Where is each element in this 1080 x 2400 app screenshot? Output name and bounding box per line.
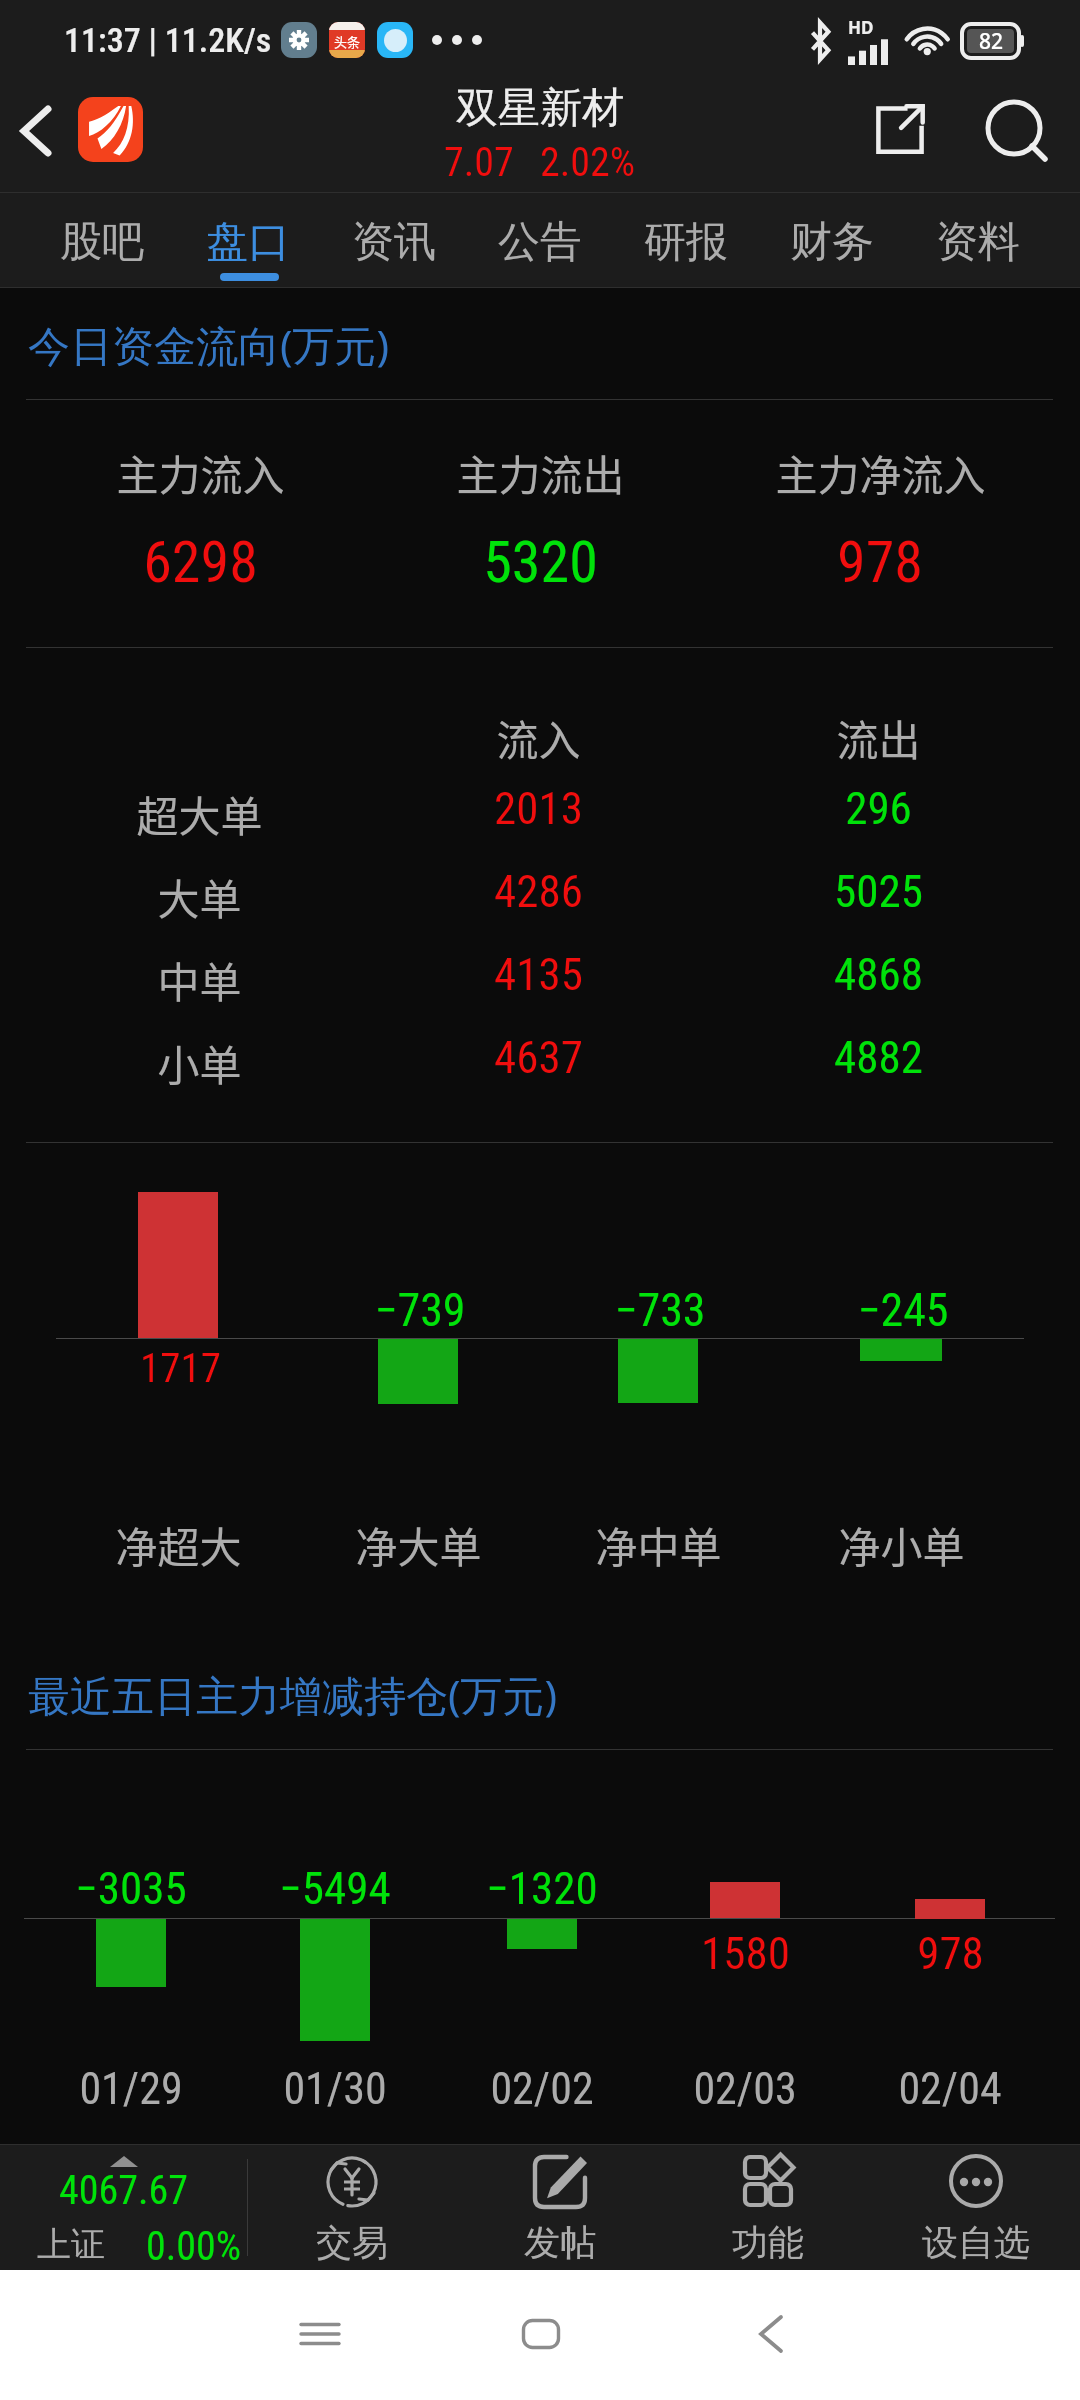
staticText: 0.00% bbox=[146, 2223, 242, 2270]
button[interactable]: 设自选 bbox=[872, 2145, 1080, 2270]
staticText: 01/30 bbox=[283, 2063, 387, 2115]
staticText: 6298 bbox=[143, 528, 258, 596]
staticText: 7.07 bbox=[444, 139, 514, 186]
button[interactable]: 财务 bbox=[759, 193, 905, 287]
button[interactable]: 4067.67 bbox=[0, 2145, 247, 2270]
staticText: 最近五日主力增减持仓(万元) bbox=[28, 1666, 558, 1723]
staticText: 设自选 bbox=[922, 2220, 1030, 2265]
staticText: 主力流入 bbox=[116, 442, 285, 503]
staticText: 上证 bbox=[37, 2223, 105, 2266]
staticText: 中单 bbox=[157, 949, 242, 1010]
button[interactable]: Home bbox=[451, 2270, 631, 2400]
button[interactable]: 资讯 bbox=[321, 193, 467, 287]
staticText: 净中单 bbox=[595, 1514, 722, 1575]
button[interactable]: App logo bbox=[78, 97, 143, 162]
staticText: 财务 bbox=[790, 216, 874, 269]
staticText: 研报 bbox=[644, 216, 728, 269]
staticText: 大单 bbox=[157, 866, 242, 927]
staticText: 1580 bbox=[701, 1927, 790, 1980]
button[interactable]: 功能 bbox=[664, 2145, 872, 2270]
staticText: 流入 bbox=[496, 707, 581, 768]
button[interactable]: 股吧 bbox=[29, 193, 175, 287]
button[interactable]: Back bbox=[0, 75, 76, 187]
staticText: 978 bbox=[917, 1927, 984, 1980]
staticText: 02/04 bbox=[898, 2063, 1002, 2115]
staticText: 4286 bbox=[494, 865, 583, 918]
staticText: 流出 bbox=[836, 707, 921, 768]
staticText: 超大单 bbox=[136, 783, 263, 844]
staticText: 4135 bbox=[494, 948, 583, 1001]
button[interactable]: 资料 bbox=[905, 193, 1051, 287]
staticText: 资料 bbox=[936, 216, 1020, 269]
staticText: 1717 bbox=[140, 1344, 221, 1392]
button[interactable]: 研报 bbox=[613, 193, 759, 287]
staticText: 82 bbox=[979, 27, 1004, 56]
staticText: 主力流出 bbox=[456, 442, 625, 503]
button[interactable]: 发帖 bbox=[456, 2145, 664, 2270]
staticText: 净超大 bbox=[115, 1514, 242, 1575]
staticText: 公告 bbox=[498, 216, 582, 269]
button[interactable]: Share bbox=[855, 84, 945, 174]
staticText: 4637 bbox=[494, 1031, 583, 1084]
staticText: HD bbox=[848, 16, 874, 39]
staticText: 净大单 bbox=[355, 1514, 482, 1575]
button[interactable]: 公告 bbox=[467, 193, 613, 287]
staticText: 978 bbox=[837, 528, 923, 596]
staticText: 今日资金流向(万元) bbox=[28, 316, 390, 373]
staticText: 11:37 | 11.2K/s bbox=[64, 20, 272, 60]
staticText: −1320 bbox=[486, 1862, 598, 1915]
staticText: 净小单 bbox=[838, 1514, 965, 1575]
staticText: −739 bbox=[374, 1283, 466, 1337]
staticText: 发帖 bbox=[524, 2220, 596, 2265]
staticText: 5320 bbox=[483, 528, 598, 596]
staticText: 02/02 bbox=[490, 2063, 594, 2115]
staticText: 双星新材 bbox=[456, 82, 624, 135]
button[interactable]: Recents bbox=[230, 2270, 410, 2400]
staticText: 2.02% bbox=[540, 139, 636, 186]
staticText: −3035 bbox=[75, 1862, 187, 1915]
staticText: 盘口 bbox=[206, 216, 290, 269]
staticText: 02/03 bbox=[693, 2063, 797, 2115]
staticText: 2013 bbox=[494, 782, 583, 835]
staticText: 资讯 bbox=[352, 216, 436, 269]
button[interactable]: Back bbox=[681, 2270, 861, 2400]
staticText: 功能 bbox=[732, 2220, 804, 2265]
staticText: 股吧 bbox=[60, 216, 144, 269]
staticText: −5494 bbox=[279, 1862, 391, 1915]
button[interactable]: 盘口 bbox=[175, 193, 321, 287]
staticText: 主力净流入 bbox=[775, 442, 986, 503]
staticText: 5025 bbox=[834, 865, 923, 918]
button[interactable]: Search bbox=[969, 83, 1065, 179]
staticText: 4067.67 bbox=[59, 2167, 189, 2214]
staticText: 4868 bbox=[834, 948, 923, 1001]
staticText: −733 bbox=[614, 1283, 706, 1337]
staticText: 4882 bbox=[834, 1031, 923, 1084]
button[interactable]: 交易 bbox=[248, 2145, 456, 2270]
staticText: 01/29 bbox=[79, 2063, 183, 2115]
staticText: −245 bbox=[857, 1283, 949, 1337]
staticText: 头条 bbox=[334, 32, 361, 51]
staticText: 小单 bbox=[157, 1032, 242, 1093]
staticText: 交易 bbox=[316, 2220, 388, 2265]
staticText: 296 bbox=[845, 782, 912, 835]
